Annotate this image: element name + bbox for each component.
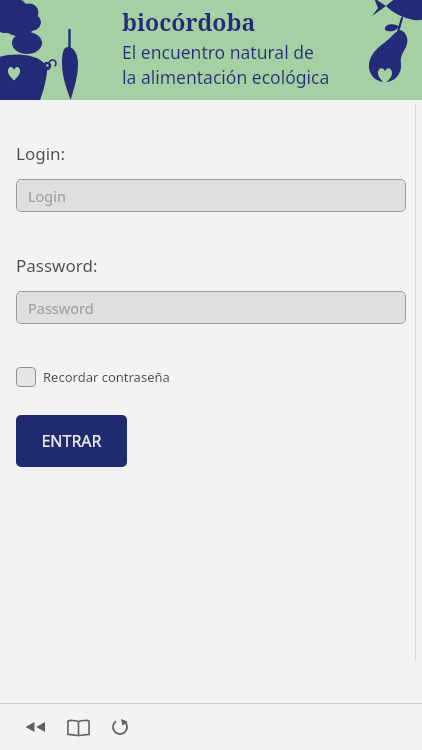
staticText: Password xyxy=(28,298,94,318)
staticText: Login: xyxy=(16,142,66,165)
staticText: la alimentación ecológica xyxy=(122,65,330,89)
staticText: ENTRAR xyxy=(41,430,102,452)
staticText: Password: xyxy=(16,254,98,277)
button[interactable]: Reload xyxy=(102,709,138,745)
staticText: El encuentro natural de xyxy=(122,40,314,64)
button[interactable]: Back xyxy=(16,709,52,745)
button[interactable]: Login xyxy=(16,179,406,212)
button[interactable]: ENTRAR xyxy=(16,415,127,467)
button[interactable]: Recordar contraseña xyxy=(16,365,170,389)
staticText: Login xyxy=(28,186,66,206)
button[interactable]: Password xyxy=(16,291,406,324)
button[interactable]: Bookmarks xyxy=(60,709,96,745)
staticText: Recordar contraseña xyxy=(43,368,170,386)
staticText: biocórdoba xyxy=(122,6,256,37)
